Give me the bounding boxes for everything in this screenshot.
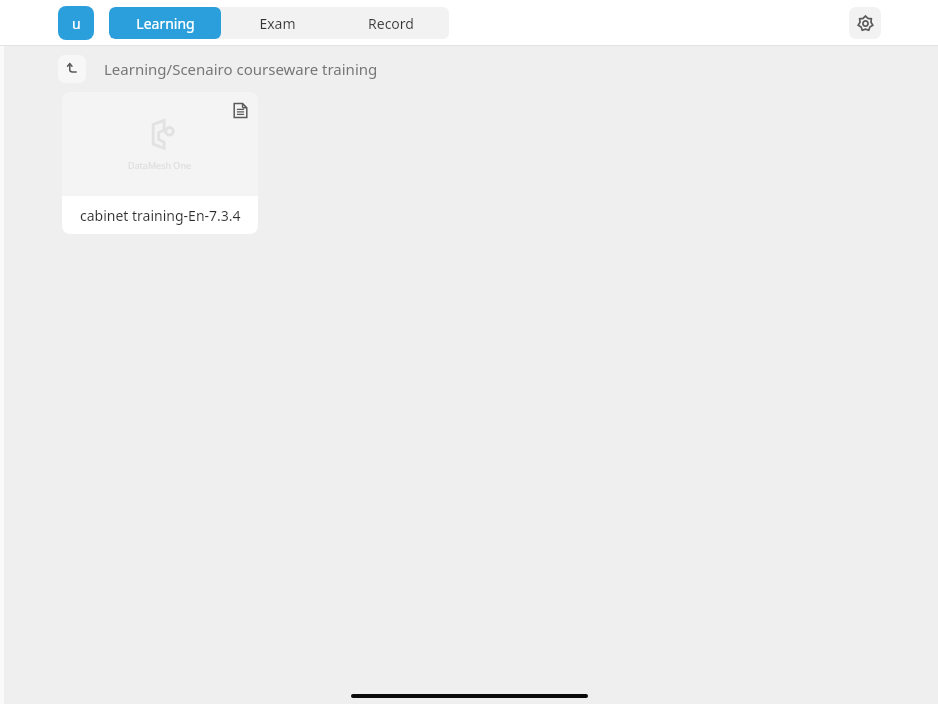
staticText: Record (368, 14, 414, 33)
button[interactable]: Record (333, 7, 449, 39)
staticText: cabinet training-En-7.3.4 (80, 206, 241, 225)
button[interactable]: Settings (849, 7, 881, 39)
button[interactable]: Document (230, 100, 250, 120)
staticText: Learning/Scenairo courseware training (104, 59, 378, 79)
button[interactable]: Back (58, 55, 86, 83)
staticText: Learning (136, 14, 195, 33)
button[interactable]: Exam (221, 7, 333, 39)
staticText: DataMesh One (128, 159, 192, 171)
staticText: u (72, 14, 81, 33)
button[interactable]: u (58, 6, 94, 40)
staticText: Exam (259, 14, 296, 33)
button[interactable]: DataMesh One (62, 92, 258, 234)
button[interactable]: Learning (109, 7, 221, 39)
